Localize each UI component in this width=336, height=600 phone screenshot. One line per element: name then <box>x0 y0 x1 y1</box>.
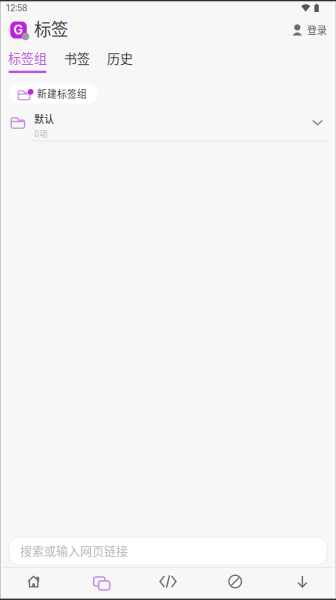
staticText: 搜索或输入网页链接 <box>20 542 128 560</box>
staticText: 标签组 <box>8 48 47 67</box>
staticText: 登录 <box>307 23 327 37</box>
button[interactable]: 默认 <box>0 103 336 141</box>
staticText: 新建标签组 <box>37 86 87 101</box>
button[interactable]: Home <box>0 569 67 597</box>
button[interactable]: Source code <box>134 569 202 597</box>
button[interactable]: 标签组 <box>8 41 47 80</box>
button[interactable]: 搜索或输入网页链接 <box>9 537 327 565</box>
staticText: 默认 <box>34 112 54 126</box>
staticText: 0项 <box>34 127 47 139</box>
staticText: G <box>13 22 23 38</box>
staticText: 标签 <box>34 15 68 41</box>
button[interactable]: Tabs <box>67 569 134 597</box>
button[interactable]: 书签 <box>64 41 90 80</box>
button[interactable]: Ad block <box>202 569 269 597</box>
staticText: 12:58 <box>6 3 27 13</box>
button[interactable]: 新建标签组 <box>8 83 98 103</box>
button[interactable]: 历史 <box>107 41 133 80</box>
button[interactable]: 登录 <box>290 18 330 42</box>
staticText: 历史 <box>107 48 133 67</box>
staticText: 书签 <box>64 48 90 67</box>
button[interactable]: Downloads <box>269 569 336 597</box>
